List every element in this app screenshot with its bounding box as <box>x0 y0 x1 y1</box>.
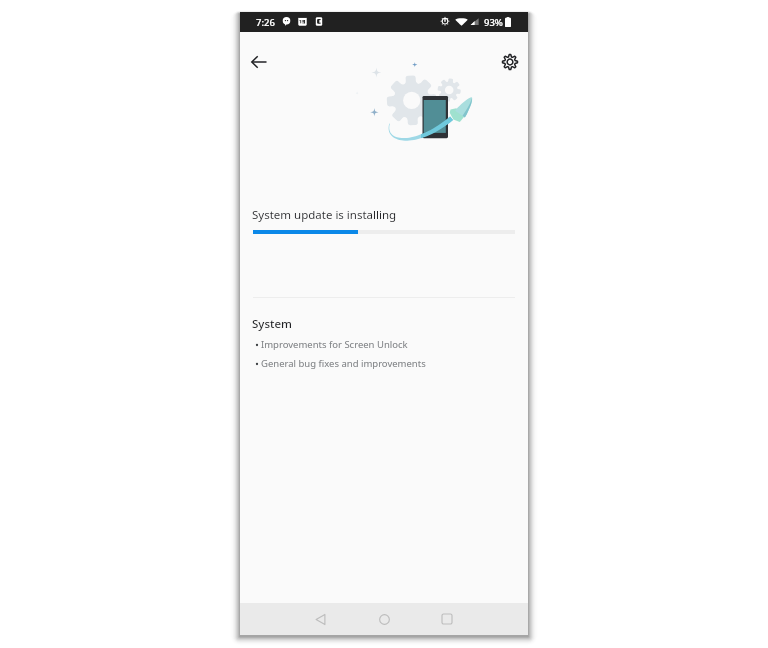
button[interactable]: Settings <box>494 46 525 77</box>
staticText: System <box>252 316 292 332</box>
button[interactable]: Back <box>243 46 274 77</box>
staticText: 93% <box>484 16 503 29</box>
staticText: System update is installing <box>252 207 397 223</box>
staticText: 7:26 <box>256 16 275 29</box>
button[interactable]: Back <box>304 603 336 635</box>
staticText: Improvements for Screen Unlock <box>261 338 408 351</box>
button[interactable]: Recents <box>431 603 463 635</box>
staticText: General bug fixes and improvements <box>261 357 426 370</box>
button[interactable]: Home <box>368 603 400 635</box>
